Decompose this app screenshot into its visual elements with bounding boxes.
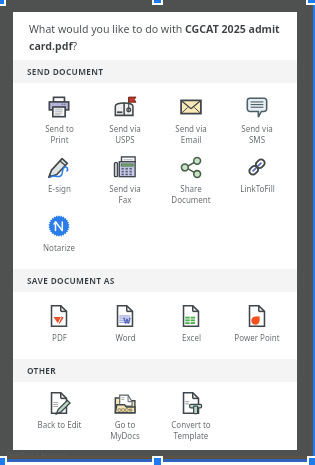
staticText: Send via Fax [109,183,141,205]
button[interactable]: Power Point [224,305,290,360]
staticText: Convert to Template [171,419,211,441]
staticText: Send to Print [45,123,74,145]
staticText: E-sign [48,183,71,194]
button[interactable]: Send to Print [26,96,92,151]
staticText: Back to Edit [37,419,82,430]
staticText: Send via USPS [109,123,141,145]
staticText: SAVE DOCUMENT AS [27,275,115,286]
button[interactable]: Back to Edit [26,392,92,447]
button[interactable]: Send via Email [158,96,224,151]
staticText: Profile / Home [6,449,67,461]
button[interactable]: Share Document [158,156,224,211]
staticText: PDF [52,332,67,343]
staticText: Go to MyDocs [110,419,140,441]
button[interactable]: Send via USPS [92,96,158,151]
staticText: Send via Email [175,123,207,145]
button[interactable]: Convert to Template [158,392,224,447]
button[interactable]: Notarize [26,215,92,270]
button[interactable]: E-sign [26,156,92,211]
staticText: OTHER [27,365,57,376]
button[interactable]: LinkToFill [224,156,290,211]
staticText: Excel [182,332,201,343]
staticText: Share Document [171,183,211,205]
button[interactable]: Go to MyDocs [92,392,158,447]
button[interactable]: PDF [26,305,92,360]
button[interactable]: Send via Fax [92,156,158,211]
button[interactable]: Send via SMS [224,96,290,151]
staticText: What would you like to do with CGCAT 202… [29,22,285,53]
staticText: LinkToFill [240,183,275,194]
staticText: Send via SMS [241,123,273,145]
staticText: SEND DOCUMENT [27,66,104,77]
button[interactable]: Word [92,305,158,360]
staticText: Word [115,332,136,343]
staticText: Power Point [234,332,280,343]
staticText: Notarize [43,242,75,253]
button[interactable]: Excel [158,305,224,360]
